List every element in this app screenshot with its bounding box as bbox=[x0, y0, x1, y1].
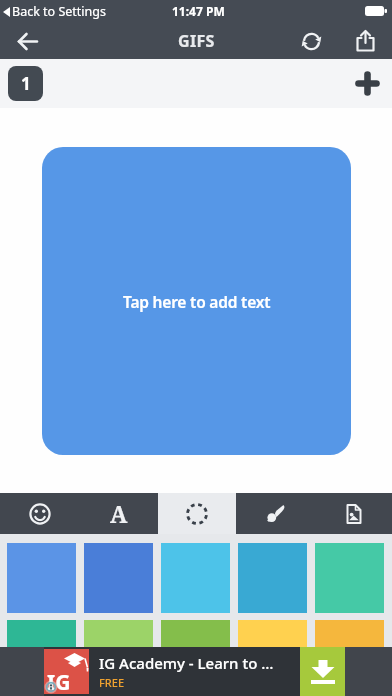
button[interactable] bbox=[10, 24, 44, 58]
staticText: A bbox=[110, 498, 128, 529]
button[interactable] bbox=[348, 24, 382, 58]
button[interactable] bbox=[236, 493, 314, 534]
button[interactable] bbox=[314, 493, 392, 534]
button[interactable] bbox=[351, 67, 384, 100]
button[interactable]: A bbox=[79, 493, 158, 534]
staticText: IG Academy - Learn to … bbox=[99, 653, 274, 673]
staticText: 11:47 PM bbox=[172, 3, 225, 19]
staticText: FREE bbox=[99, 675, 125, 690]
button[interactable]: IG bbox=[44, 647, 300, 696]
button[interactable] bbox=[294, 24, 328, 58]
staticText: Tap here to add text bbox=[123, 291, 271, 312]
button[interactable] bbox=[7, 620, 76, 690]
button[interactable] bbox=[315, 620, 384, 690]
staticText: Back to Settings bbox=[12, 3, 106, 20]
staticText: IG bbox=[47, 668, 71, 696]
button[interactable] bbox=[0, 493, 79, 534]
button[interactable]: Tap here to add text bbox=[42, 147, 351, 455]
button[interactable] bbox=[158, 493, 236, 534]
button[interactable] bbox=[300, 647, 345, 696]
button[interactable] bbox=[84, 620, 153, 690]
staticText: 1 bbox=[21, 72, 31, 95]
button[interactable] bbox=[238, 620, 307, 690]
button[interactable] bbox=[161, 620, 230, 690]
staticText: GIFS bbox=[178, 30, 215, 52]
button[interactable]: 1 bbox=[8, 66, 43, 101]
